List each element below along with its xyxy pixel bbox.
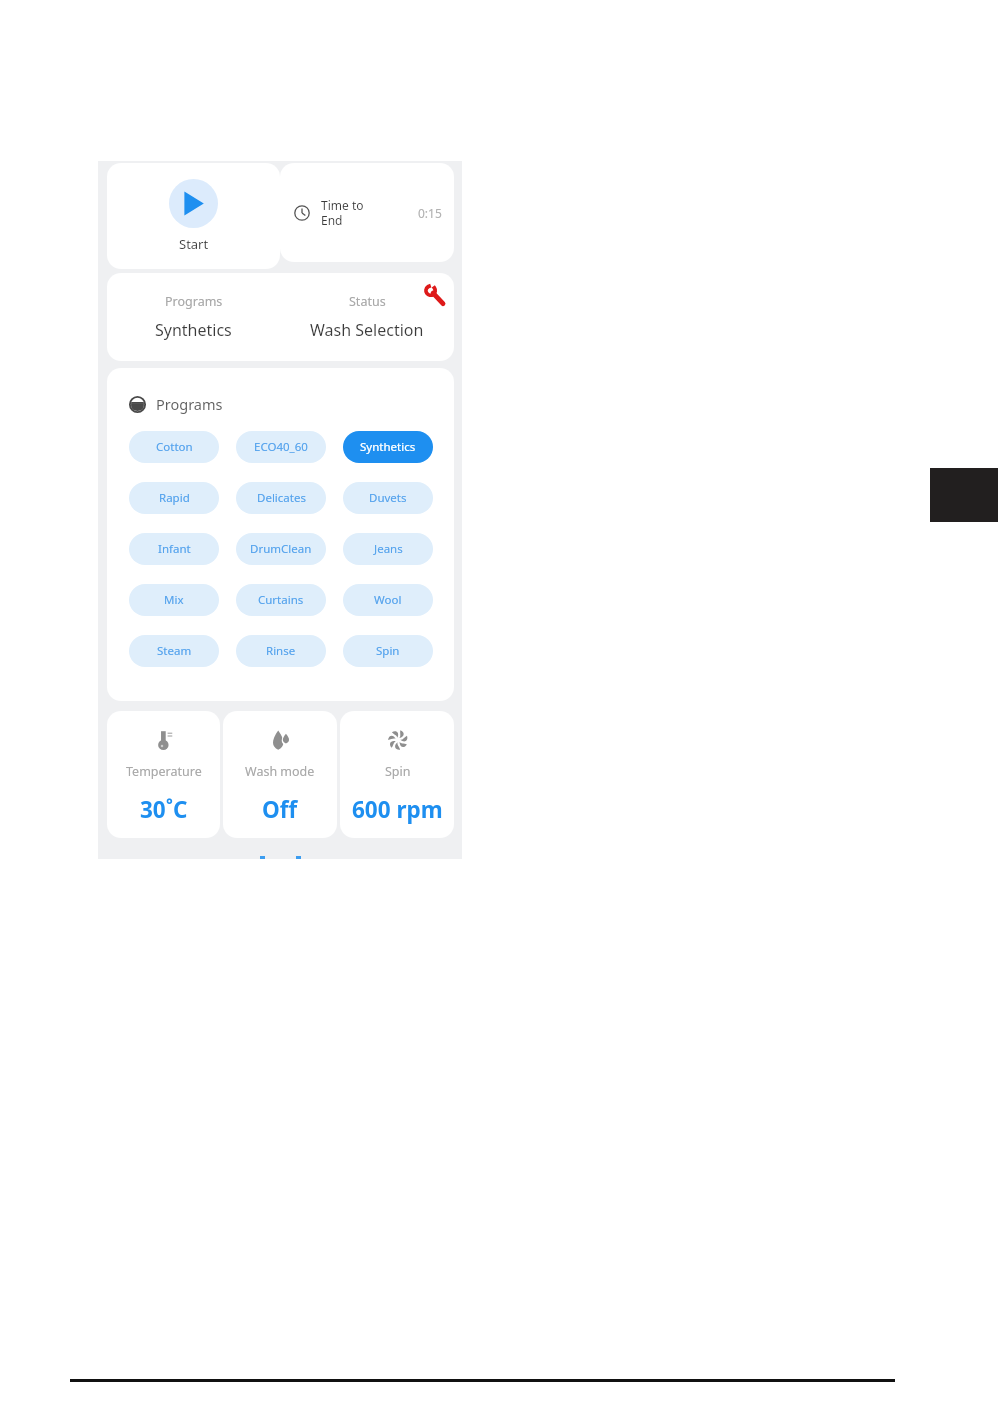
staticText: Wash Selection xyxy=(310,319,424,341)
button[interactable]: Duvets xyxy=(343,482,433,514)
staticText: Programs xyxy=(156,394,223,414)
staticText: Steam xyxy=(157,643,192,659)
staticText: Spin xyxy=(385,763,411,780)
button[interactable]: Synthetics xyxy=(343,431,433,463)
staticText: Programs xyxy=(165,293,223,310)
button[interactable]: Wool xyxy=(343,584,433,616)
button[interactable]: Delicates xyxy=(236,482,326,514)
button[interactable]: Temperature xyxy=(107,711,220,838)
staticText: Mix xyxy=(164,592,184,608)
button[interactable]: Jeans xyxy=(343,533,433,565)
staticText: Rapid xyxy=(159,490,190,506)
button[interactable]: DrumClean xyxy=(236,533,326,565)
staticText: 0:15 xyxy=(418,205,442,221)
staticText: Off xyxy=(262,794,298,825)
button[interactable]: Steam xyxy=(129,635,219,667)
button[interactable]: Status xyxy=(280,273,454,361)
button[interactable]: Rapid xyxy=(129,482,219,514)
button[interactable]: Mix xyxy=(129,584,219,616)
button[interactable]: Programs xyxy=(107,273,280,361)
staticText: Duvets xyxy=(369,490,407,506)
staticText: Curtains xyxy=(258,592,304,608)
staticText: Wool xyxy=(374,592,402,608)
staticText: Start xyxy=(179,235,209,253)
button[interactable]: Time to End xyxy=(280,163,454,262)
button[interactable]: Curtains xyxy=(236,584,326,616)
staticText: Time to End xyxy=(321,197,383,228)
button[interactable]: Infant xyxy=(129,533,219,565)
staticText: Infant xyxy=(158,541,191,557)
staticText: Temperature xyxy=(126,763,202,780)
staticText: Synthetics xyxy=(155,319,232,341)
staticText: Delicates xyxy=(257,490,306,506)
staticText: Jeans xyxy=(374,541,403,557)
staticText: Spin xyxy=(376,643,400,659)
staticText: 600 rpm xyxy=(352,794,443,825)
staticText: Rinse xyxy=(266,643,296,659)
button[interactable]: Rinse xyxy=(236,635,326,667)
staticText: 30˚C xyxy=(140,794,188,825)
staticText: Wash mode xyxy=(245,763,315,780)
staticText: DrumClean xyxy=(250,541,312,557)
staticText: ECO40_60 xyxy=(254,439,308,455)
staticText: Status xyxy=(349,293,386,310)
button[interactable]: Start xyxy=(107,163,280,269)
button[interactable]: Wash mode xyxy=(223,711,337,838)
button[interactable]: Spin xyxy=(343,635,433,667)
staticText: Cotton xyxy=(156,439,193,455)
staticText: Synthetics xyxy=(360,439,416,455)
button[interactable]: ECO40_60 xyxy=(236,431,326,463)
button[interactable]: Spin xyxy=(340,711,454,838)
button[interactable]: Service xyxy=(423,283,446,306)
button[interactable]: Cotton xyxy=(129,431,219,463)
